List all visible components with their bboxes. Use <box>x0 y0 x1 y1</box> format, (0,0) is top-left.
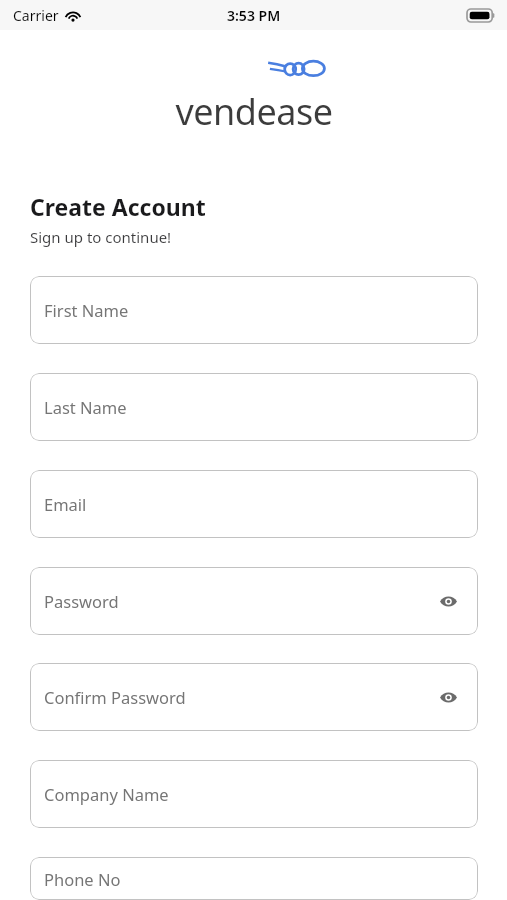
staticText: vendease <box>169 87 339 136</box>
button[interactable]: Phone No <box>30 857 478 900</box>
button[interactable]: Last Name <box>30 373 478 441</box>
staticText: First Name <box>44 299 129 321</box>
staticText: Last Name <box>44 396 127 418</box>
staticText: Phone No <box>44 868 121 890</box>
staticText: Create Account <box>30 191 206 222</box>
button[interactable]: Show password <box>435 588 461 614</box>
button[interactable]: First Name <box>30 276 478 344</box>
button[interactable]: Show password <box>435 684 461 710</box>
staticText: Carrier <box>13 6 59 25</box>
staticText: Company Name <box>44 783 169 805</box>
staticText: Confirm Password <box>44 686 186 708</box>
staticText: 3:53 PM <box>227 6 281 25</box>
button[interactable]: Email <box>30 470 478 538</box>
button[interactable]: Confirm Password <box>30 663 478 731</box>
staticText: Password <box>44 590 119 612</box>
staticText: Email <box>44 493 87 515</box>
staticText: Sign up to continue! <box>30 227 172 247</box>
button[interactable]: Company Name <box>30 760 478 828</box>
button[interactable]: Password <box>30 567 478 635</box>
